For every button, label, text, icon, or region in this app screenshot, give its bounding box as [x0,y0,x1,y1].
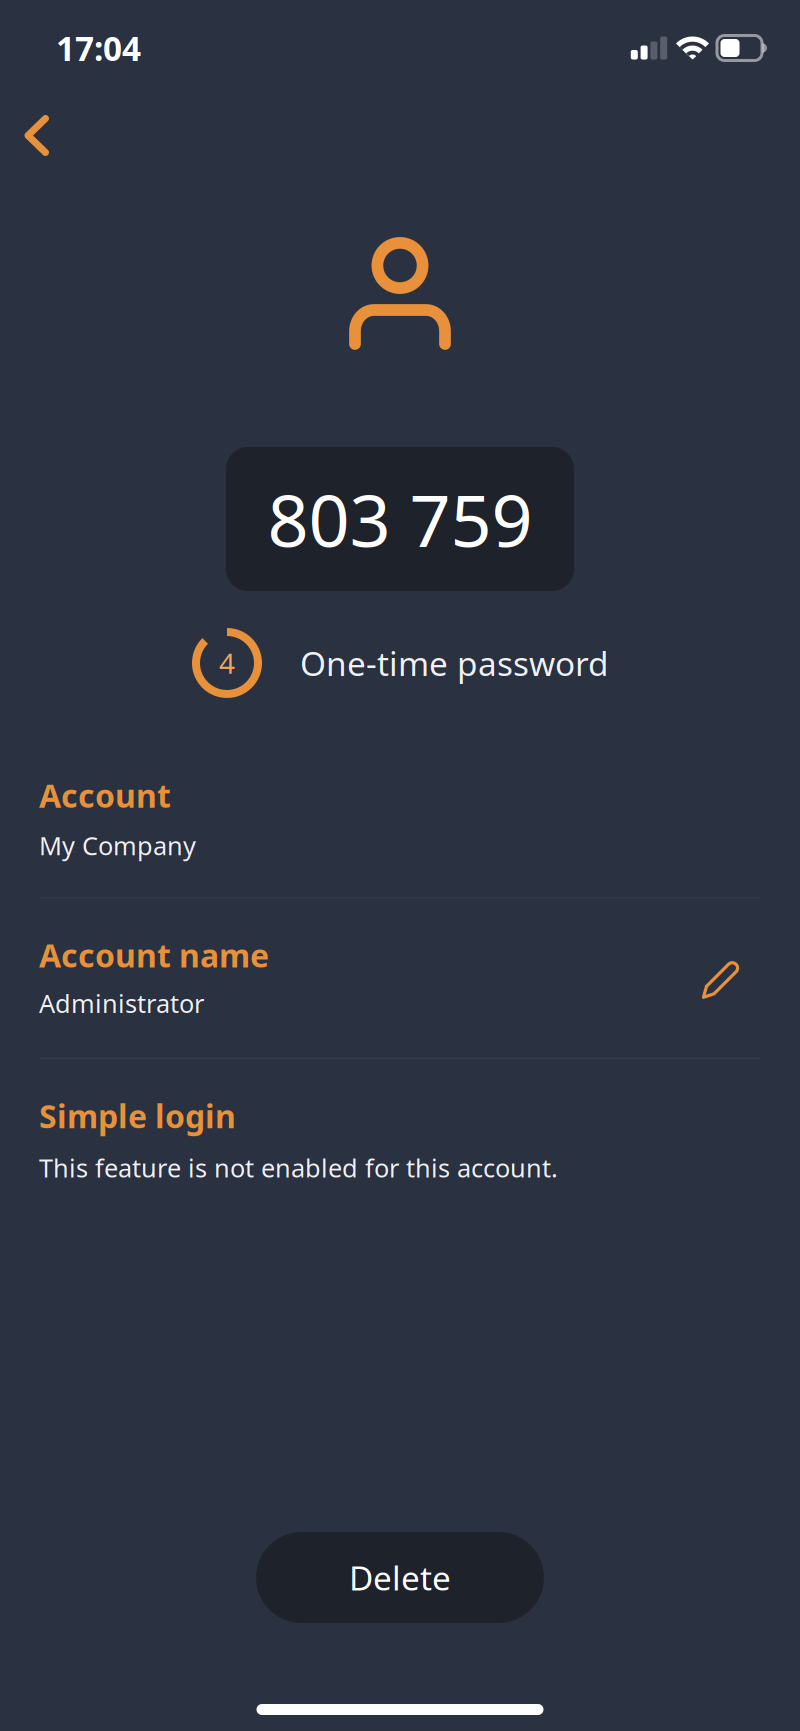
staticText: 803 759 [267,471,532,567]
staticText: This feature is not enabled for this acc… [39,1151,558,1185]
staticText: Account [39,774,171,816]
staticText: 4 [219,644,235,682]
button[interactable]: Delete [256,1532,544,1623]
staticText: 17:04 [56,26,141,70]
staticText: Delete [349,1555,451,1600]
button[interactable]: Back [0,72,75,199]
staticText: One-time password [300,641,609,685]
staticText: Simple login [39,1094,236,1137]
button[interactable]: Edit account name [685,949,761,1005]
staticText: My Company [39,828,196,862]
staticText: Administrator [39,986,204,1020]
staticText: Account name [39,934,269,976]
